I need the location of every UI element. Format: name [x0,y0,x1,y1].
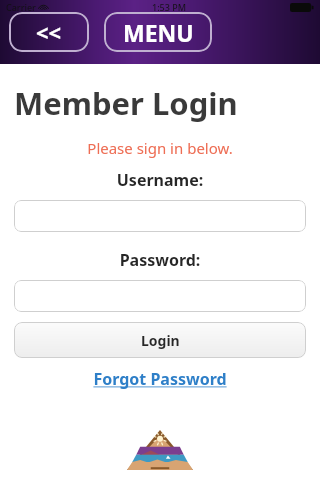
staticText: Carrier [6,1,36,13]
staticText: Forgot Password [93,368,227,390]
button[interactable] [14,280,306,312]
staticText: Member Login [14,82,320,124]
staticText: MENU [123,17,194,48]
button[interactable]: Login [14,322,306,358]
button[interactable] [14,200,306,232]
staticText: Username: [0,169,320,191]
button[interactable]: Back [9,12,89,52]
button[interactable]: Forgot Password [0,368,320,390]
staticText: Login [141,331,180,350]
staticText: Please sign in below. [0,138,320,158]
staticText: << [36,17,62,47]
button[interactable]: MENU [104,12,212,52]
staticText: Password: [0,249,320,271]
staticText: 1:53 PM [152,1,186,13]
